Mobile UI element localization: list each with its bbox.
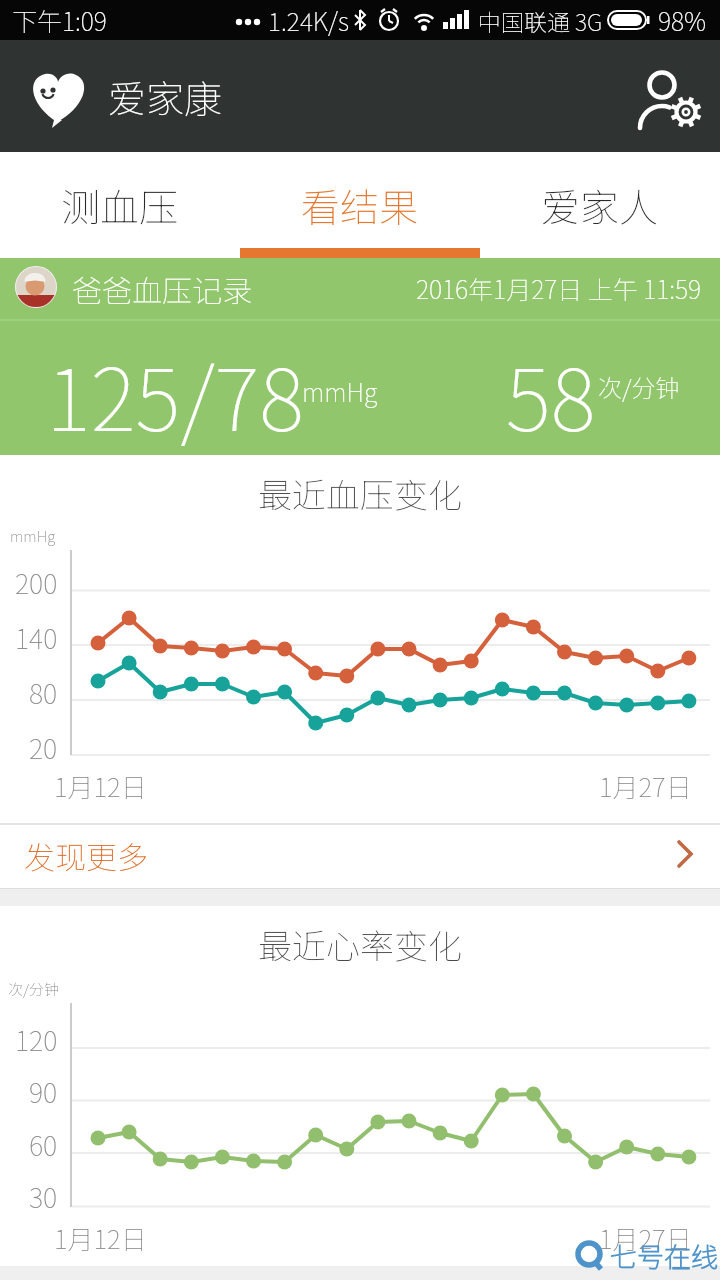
staticText: 中国联通 3G xyxy=(478,4,603,37)
staticText: 1月27日 xyxy=(599,767,692,805)
button[interactable]: 爱家人 xyxy=(480,152,720,258)
staticText: 发现更多 xyxy=(24,833,148,878)
staticText: mmHg xyxy=(10,525,56,547)
staticText: 1月12日 xyxy=(54,1219,147,1257)
staticText: 2016年1月27日 上午 11:59 xyxy=(416,270,702,306)
button[interactable]: 看结果 xyxy=(240,152,480,258)
staticText: 测血压 xyxy=(61,177,179,233)
staticText: 七号在线 xyxy=(610,1236,718,1275)
staticText: 120 xyxy=(15,1020,58,1059)
staticText: mmHg xyxy=(302,373,378,409)
staticText: 98% xyxy=(658,2,707,38)
staticText: 爱家人 xyxy=(541,177,659,233)
staticText: 次/分钟 xyxy=(598,369,680,404)
staticText: 80 xyxy=(29,673,58,712)
staticText: 最近心率变化 xyxy=(258,920,462,969)
staticText: 看结果 xyxy=(301,177,419,233)
button[interactable]: 测血压 xyxy=(0,152,240,258)
staticText: 60 xyxy=(29,1125,58,1164)
button[interactable] xyxy=(638,64,708,134)
button[interactable]: 发现更多 xyxy=(0,823,720,888)
staticText: 最近血压变化 xyxy=(258,469,462,518)
staticText: 爱家康 xyxy=(108,69,223,124)
staticText: 20 xyxy=(29,728,58,767)
staticText: 下午1:09 xyxy=(12,2,107,38)
staticText: 200 xyxy=(15,563,58,602)
staticText: 1月27日 xyxy=(599,1219,692,1257)
staticText: 140 xyxy=(15,618,58,657)
staticText: 58 xyxy=(506,331,596,451)
staticText: 125/78 xyxy=(46,331,305,451)
button[interactable] xyxy=(15,266,57,308)
staticText: 1月12日 xyxy=(54,767,147,805)
staticText: 1.24K/s xyxy=(268,2,349,38)
staticText: 爸爸血压记录 xyxy=(72,267,252,310)
staticText: 次/分钟 xyxy=(8,978,59,1000)
staticText: 90 xyxy=(29,1072,58,1111)
staticText: 30 xyxy=(29,1177,58,1216)
